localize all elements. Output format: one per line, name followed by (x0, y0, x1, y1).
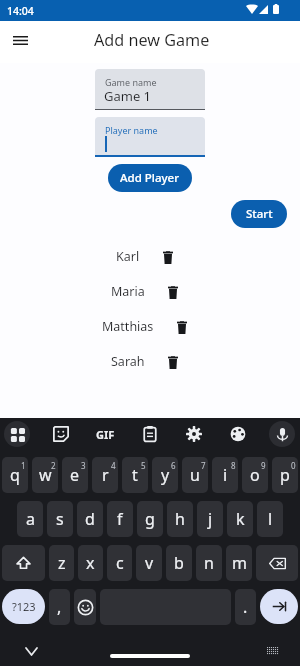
button[interactable]: Settings (181, 421, 207, 447)
button[interactable]: Maria (111, 283, 180, 300)
button[interactable]: Add new Game (94, 29, 210, 51)
button[interactable]: App shortcuts (4, 421, 30, 447)
staticText: w (39, 464, 52, 486)
staticText: GIF (96, 427, 115, 442)
staticText: 6 (171, 460, 176, 471)
button[interactable]: , (49, 589, 70, 625)
staticText: 2 (51, 460, 56, 471)
staticText: d (85, 508, 95, 530)
staticText: z (58, 552, 66, 574)
button[interactable]: k (227, 501, 253, 537)
button[interactable]: h (167, 501, 193, 537)
button[interactable]: m (226, 545, 252, 581)
staticText: 3 (81, 460, 86, 471)
staticText: Player name (105, 124, 158, 136)
staticText: 7 (201, 460, 206, 471)
staticText: b (174, 552, 184, 574)
button[interactable]: Clipboard (137, 421, 163, 447)
staticText: l (268, 508, 273, 530)
button[interactable]: Delete Matthias (175, 319, 189, 335)
staticText: 9 (261, 460, 266, 471)
button[interactable]: GIF (92, 421, 118, 447)
button[interactable]: t (122, 457, 148, 493)
button[interactable]: w (32, 457, 58, 493)
staticText: 4 (111, 460, 116, 471)
button[interactable]: b (166, 545, 192, 581)
staticText: Start (246, 206, 273, 222)
button[interactable]: Matthias (102, 318, 189, 335)
button[interactable]: . (235, 589, 256, 625)
staticText: c (116, 552, 124, 574)
button[interactable]: q (2, 457, 28, 493)
staticText: f (117, 508, 123, 530)
button[interactable]: c (107, 545, 132, 581)
staticText: v (145, 552, 154, 574)
button[interactable]: a (17, 501, 43, 537)
button[interactable]: Player name (95, 117, 205, 155)
button[interactable]: g (137, 501, 163, 537)
staticText: 1 (21, 460, 26, 471)
button[interactable]: Hide keyboard (23, 643, 39, 659)
staticText: 8 (231, 460, 236, 471)
staticText: , (57, 596, 62, 618)
button[interactable]: Stickers (48, 421, 74, 447)
button[interactable]: i (212, 457, 238, 493)
button[interactable]: r (92, 457, 118, 493)
staticText: Matthias (102, 318, 154, 335)
staticText: t (132, 464, 138, 486)
staticText: . (243, 596, 248, 618)
button[interactable]: d (77, 501, 103, 537)
staticText: h (175, 508, 185, 530)
button[interactable]: Open navigation menu (3, 23, 37, 57)
button[interactable]: Delete Maria (166, 284, 180, 300)
staticText: p (280, 464, 290, 486)
staticText: e (70, 464, 80, 486)
button[interactable]: y (152, 457, 178, 493)
button[interactable]: p (272, 457, 298, 493)
staticText: x (86, 552, 95, 574)
button[interactable]: Shift (2, 545, 45, 581)
staticText: Add Player (120, 170, 180, 186)
button[interactable]: Enter (260, 589, 298, 624)
staticText: Game name (105, 76, 157, 88)
staticText: Game 1 (104, 87, 152, 105)
button[interactable]: Backspace (256, 545, 298, 581)
button[interactable]: Delete Karl (161, 249, 175, 265)
button[interactable]: Delete Sarah (166, 354, 180, 370)
staticText: ?123 (12, 599, 36, 614)
staticText: j (208, 508, 213, 530)
staticText: 5 (141, 460, 146, 471)
staticText: m (232, 552, 247, 574)
button[interactable]: Sarah (111, 353, 180, 370)
button[interactable]: Game name (95, 69, 205, 109)
staticText: Sarah (111, 353, 145, 370)
button[interactable]: o (242, 457, 268, 493)
button[interactable]: Start (231, 200, 287, 228)
staticText: a (26, 508, 35, 530)
button[interactable]: s (47, 501, 73, 537)
button[interactable]: f (107, 501, 133, 537)
button[interactable]: Voice input (269, 421, 295, 447)
button[interactable]: Emoji (74, 589, 96, 625)
staticText: g (145, 508, 155, 530)
button[interactable]: n (196, 545, 222, 581)
staticText: Maria (111, 283, 145, 300)
button[interactable]: Change keyboard (266, 644, 280, 658)
button[interactable]: Add Player (108, 164, 192, 192)
staticText: k (236, 508, 245, 530)
button[interactable]: Karl (116, 248, 175, 265)
button[interactable]: l (257, 501, 283, 537)
staticText: y (161, 464, 170, 486)
button[interactable]: e (62, 457, 88, 493)
button[interactable]: ?123 (2, 589, 45, 624)
staticText: q (10, 464, 20, 486)
button[interactable]: z (49, 545, 74, 581)
button[interactable]: Themes (225, 421, 251, 447)
button[interactable]: v (136, 545, 162, 581)
staticText: s (56, 508, 64, 530)
button[interactable]: x (78, 545, 103, 581)
staticText: o (250, 464, 260, 486)
button[interactable]: j (197, 501, 223, 537)
button[interactable]: u (182, 457, 208, 493)
